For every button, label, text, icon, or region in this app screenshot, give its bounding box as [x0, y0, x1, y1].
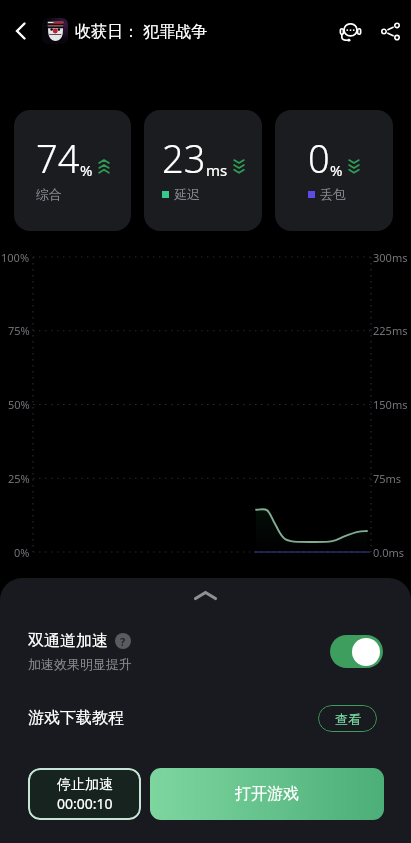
staticText: ms — [206, 160, 228, 180]
button[interactable]: Share — [369, 10, 411, 52]
staticText: 150ms — [373, 397, 408, 412]
staticText: 双通道加速 — [28, 631, 108, 651]
staticText: 75% — [8, 323, 30, 338]
staticText: 23 — [162, 132, 206, 184]
staticText: 打开游戏 — [235, 784, 299, 804]
button[interactable]: Dual channel acceleration toggle — [330, 635, 383, 668]
staticText: 查看 — [335, 711, 361, 727]
button[interactable]: 0 — [275, 110, 393, 231]
button[interactable]: Back — [0, 10, 42, 52]
staticText: 225ms — [373, 323, 408, 338]
staticText: 100% — [1, 250, 30, 265]
button[interactable]: 双通道加速 — [0, 612, 411, 690]
button[interactable]: 停止加速 — [28, 768, 141, 820]
staticText: % — [330, 160, 343, 180]
staticText: 00:00:10 — [57, 794, 113, 813]
button[interactable]: 23 — [144, 110, 262, 231]
staticText: 收获日： 犯罪战争 — [75, 20, 208, 42]
staticText: 75ms — [373, 471, 402, 486]
staticText: 0.0ms — [373, 545, 405, 560]
staticText: 游戏下载教程 — [28, 708, 124, 728]
staticText: 74 — [36, 132, 80, 184]
button[interactable]: 打开游戏 — [150, 768, 384, 820]
staticText: ? — [120, 634, 126, 649]
button[interactable]: Customer service — [329, 10, 371, 52]
button[interactable]: Help — [115, 633, 131, 649]
staticText: 停止加速 — [57, 776, 113, 794]
staticText: 300ms — [373, 250, 408, 265]
button[interactable]: Expand panel — [0, 578, 411, 612]
staticText: 加速效果明显提升 — [28, 656, 132, 672]
button[interactable]: 74 — [14, 110, 131, 231]
staticText: 50% — [8, 397, 30, 412]
staticText: 0 — [308, 132, 330, 184]
staticText: 综合 — [36, 186, 62, 202]
staticText: 丢包 — [320, 186, 346, 202]
button[interactable]: 游戏下载教程 — [0, 690, 411, 746]
button[interactable]: 查看 — [318, 705, 377, 732]
staticText: 25% — [8, 471, 30, 486]
staticText: 延迟 — [174, 186, 200, 202]
staticText: 0% — [14, 545, 30, 560]
staticText: % — [80, 160, 93, 180]
